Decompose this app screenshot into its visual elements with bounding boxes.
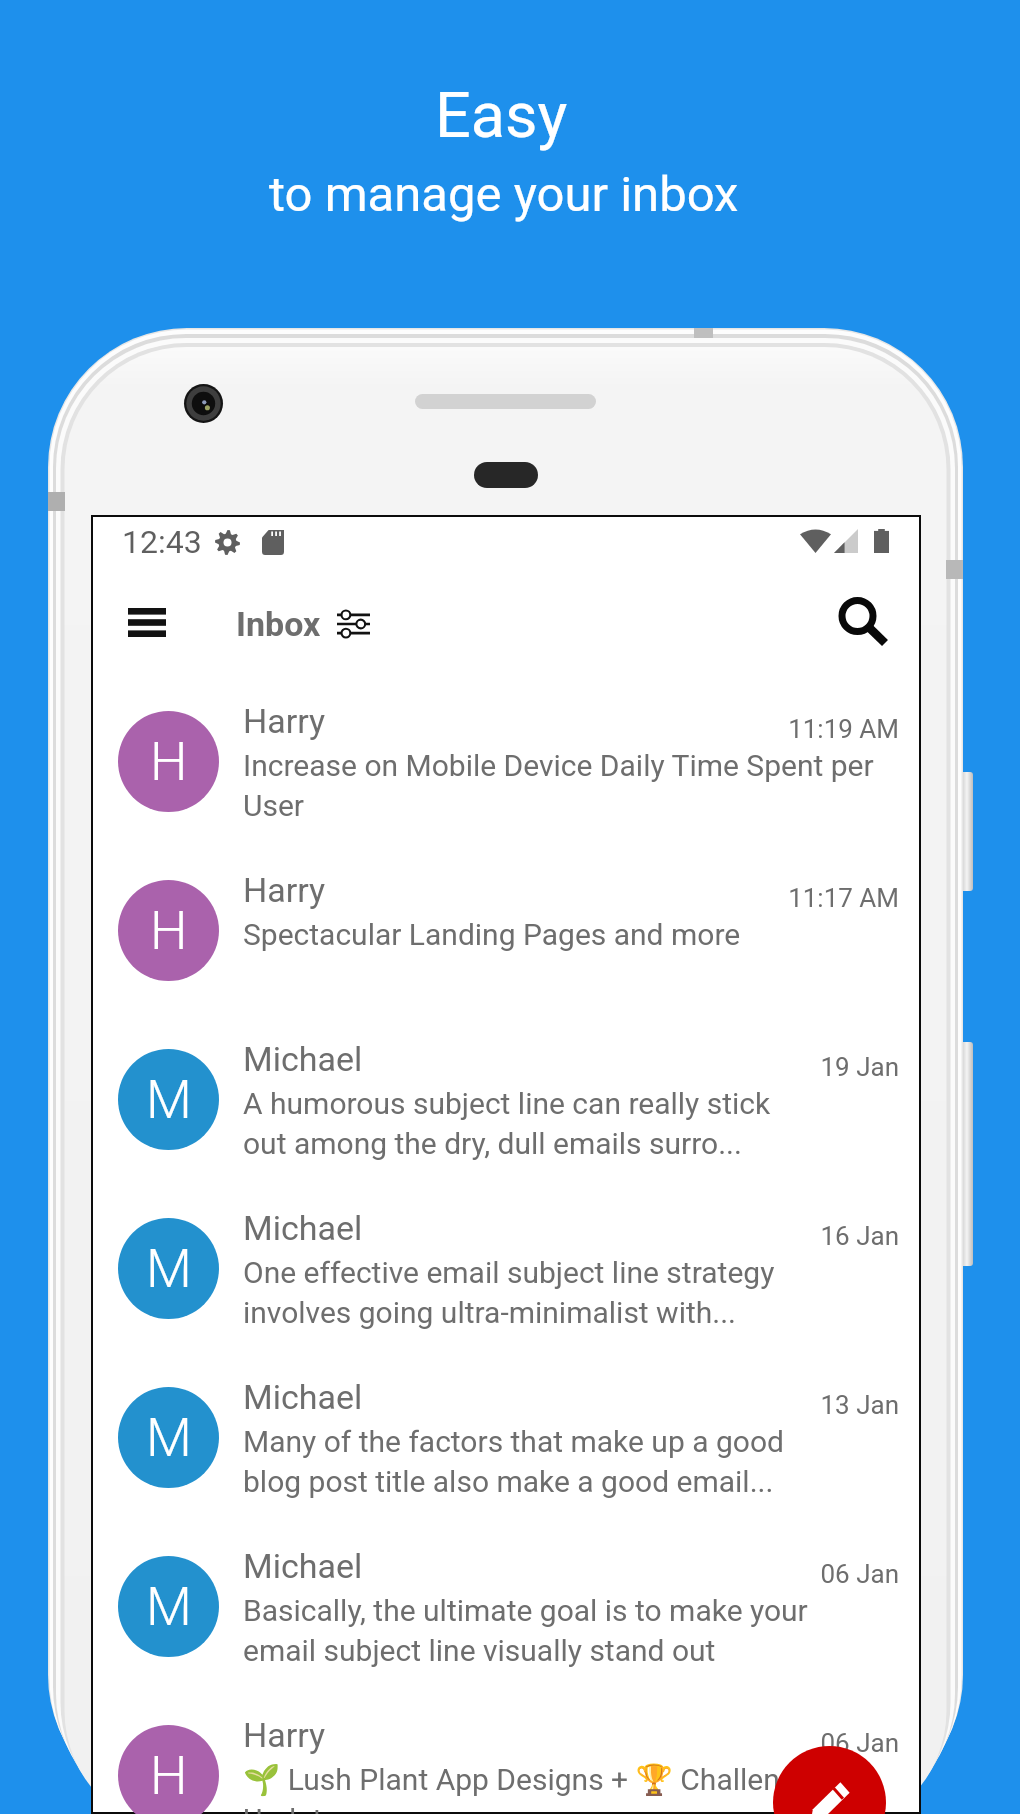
staticText: Basically, the ultimate goal is to make … [243,1593,808,1668]
button[interactable]: M [93,1009,919,1178]
staticText: 06 Jan [727,1559,899,1589]
staticText: 🌱 Lush Plant App Designs + 🏆 Challenge U… [243,1762,813,1814]
staticText: H [150,731,188,793]
staticText: H [150,1745,188,1807]
staticText: Michael [243,1208,363,1248]
button[interactable]: M [93,1347,919,1516]
staticText: A humorous subject line can really stick… [243,1086,771,1161]
button[interactable]: M [93,1516,919,1685]
staticText: Increase on Mobile Device Daily Time Spe… [243,748,874,823]
staticText: 11:19 AM [727,714,899,744]
staticText: to manage your inbox [269,166,739,223]
staticText: 06 Jan [727,1728,899,1758]
staticText: Harry [243,870,326,910]
staticText: 16 Jan [727,1221,899,1251]
button[interactable]: Menu [106,581,188,663]
staticText: Spectacular Landing Pages and more [243,917,741,952]
staticText: M [146,1069,192,1131]
staticText: M [146,1238,192,1300]
staticText: Harry [243,701,326,741]
button[interactable]: H [93,671,919,840]
staticText: M [146,1576,192,1638]
button[interactable]: Search [815,574,911,670]
button[interactable]: H [93,840,919,1009]
staticText: M [146,1407,192,1469]
staticText: Michael [243,1039,363,1079]
staticText: Inbox [236,604,321,644]
button[interactable]: Filter [326,597,380,651]
staticText: H [150,900,188,962]
staticText: Michael [243,1377,363,1417]
button[interactable]: H [93,1685,919,1812]
staticText: Easy [435,79,568,153]
button[interactable]: M [93,1178,919,1347]
staticText: 12:43 [122,523,202,561]
staticText: 19 Jan [727,1052,899,1082]
button[interactable]: Compose [773,1746,886,1814]
staticText: Many of the factors that make up a good … [243,1424,784,1499]
staticText: One effective email subject line strateg… [243,1255,775,1330]
staticText: Michael [243,1546,363,1586]
staticText: 13 Jan [727,1390,899,1420]
staticText: 11:17 AM [727,883,899,913]
staticText: Harry [243,1715,326,1755]
